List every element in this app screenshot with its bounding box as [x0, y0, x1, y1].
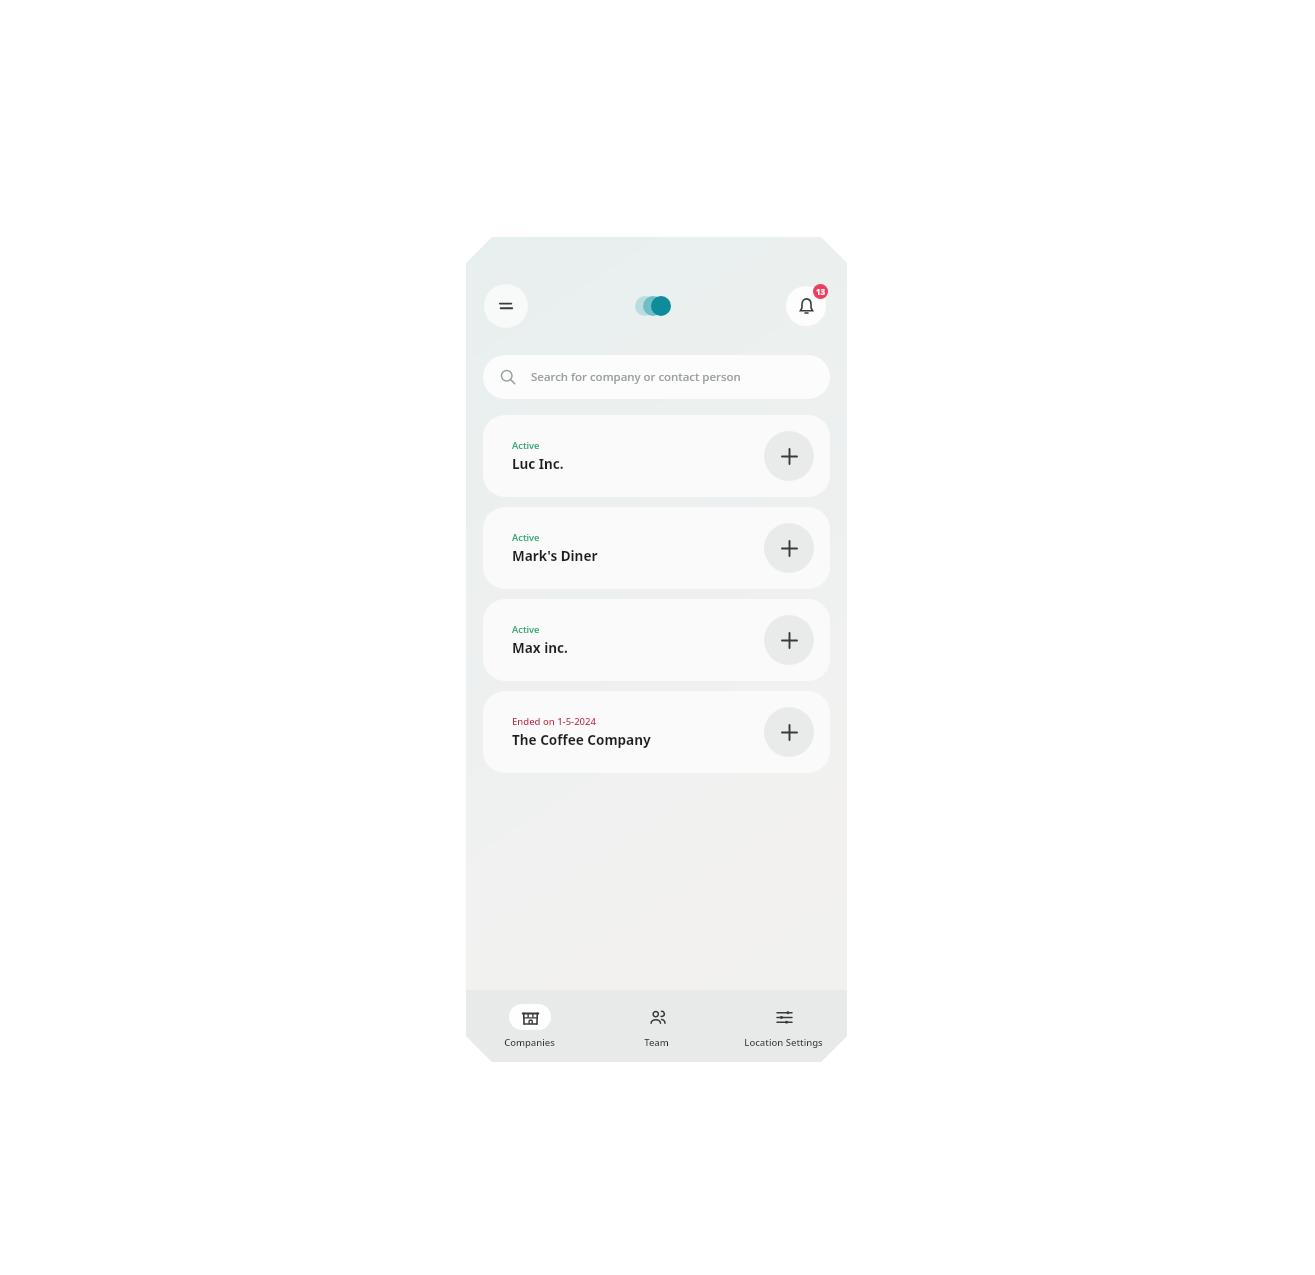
other: Team	[649, 1009, 666, 1026]
button[interactable]: Add The Coffee Company	[764, 707, 814, 757]
staticText: Location Settings	[744, 1036, 823, 1049]
staticText: Luc Inc.	[512, 455, 564, 473]
button[interactable]: Location Settings	[720, 990, 847, 1062]
staticText: Companies	[504, 1036, 555, 1049]
staticText: Mark's Diner	[512, 547, 598, 565]
button[interactable]: Search for company or contact person	[483, 355, 830, 399]
button[interactable]: Add Mark's Diner	[764, 523, 814, 573]
button[interactable]: Menu	[484, 284, 528, 328]
other: Location Settings	[776, 1009, 793, 1026]
staticText: Active	[512, 439, 540, 452]
button[interactable]: Add Luc Inc.	[764, 431, 814, 481]
staticText: Active	[512, 531, 540, 544]
button[interactable]: Team	[593, 990, 720, 1062]
button[interactable]: Ended on 1-5-2024	[483, 691, 830, 773]
staticText: Search for company or contact person	[531, 369, 741, 385]
button[interactable]: Active	[483, 415, 830, 497]
staticText: Active	[512, 623, 540, 636]
staticText: 13	[816, 286, 826, 297]
staticText: Ended on 1-5-2024	[512, 715, 596, 728]
other: Companies	[522, 1009, 539, 1026]
button[interactable]: Notifications	[786, 286, 826, 326]
button[interactable]: Active	[483, 599, 830, 681]
button[interactable]: Active	[483, 507, 830, 589]
button[interactable]: Add Max inc.	[764, 615, 814, 665]
staticText: Team	[644, 1036, 669, 1049]
staticText: Max inc.	[512, 639, 568, 657]
staticText: The Coffee Company	[512, 731, 651, 749]
button[interactable]: Companies	[466, 990, 593, 1062]
